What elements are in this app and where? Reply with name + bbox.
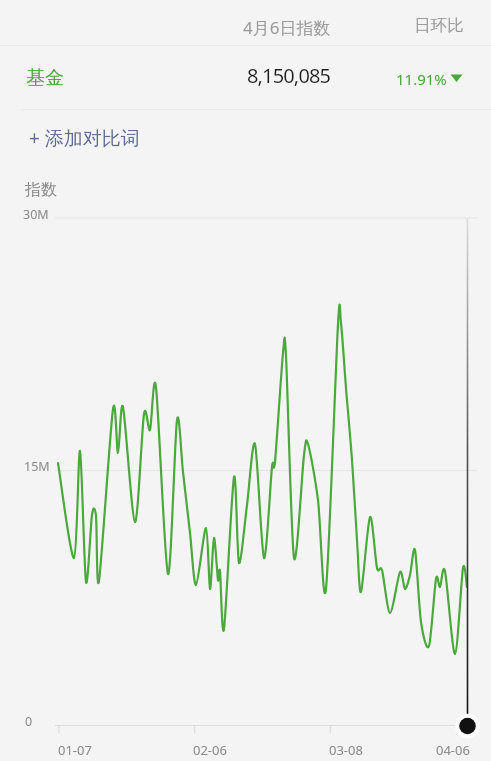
staticText: 0 (25, 713, 33, 730)
staticText: 4月6日指数 (243, 16, 331, 39)
staticText: 02-06 (193, 741, 227, 759)
button[interactable]: + 添加对比词 (19, 115, 150, 161)
staticText: 基金 (26, 66, 64, 90)
staticText: 8,150,085 (247, 62, 331, 89)
staticText: 03-08 (329, 741, 363, 759)
button[interactable]: 日环比 (404, 5, 474, 46)
staticText: 30M (23, 206, 49, 223)
staticText: 04-06 (436, 741, 470, 759)
staticText: 01-07 (58, 741, 92, 759)
staticText: 15M (24, 458, 50, 475)
staticText: 日环比 (414, 15, 464, 36)
staticText: + 添加对比词 (29, 125, 140, 151)
button[interactable]: 基金 (16, 56, 74, 100)
staticText: 指数 (25, 180, 57, 200)
staticText: 11.91% (396, 69, 447, 89)
